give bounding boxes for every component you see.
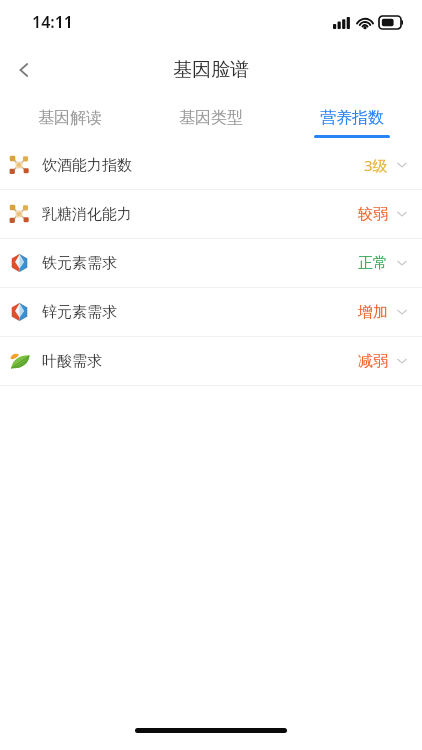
staticText: 铁元素需求 [42,254,117,273]
button[interactable]: 铁元素需求 [0,239,422,287]
staticText: 饮酒能力指数 [42,156,132,175]
button[interactable]: 叶酸需求 [0,337,422,385]
button[interactable]: 营养指数 [281,96,422,141]
staticText: 营养指数 [320,108,384,128]
staticText: 减弱 [358,352,388,371]
staticText: 增加 [358,303,388,322]
button[interactable]: 锌元素需求 [0,288,422,336]
staticText: 叶酸需求 [42,352,102,371]
button[interactable]: 基因解读 [0,96,140,141]
staticText: 基因脸谱 [173,58,249,82]
button[interactable]: 饮酒能力指数 [0,141,422,189]
staticText: 较弱 [358,205,388,224]
staticText: 基因类型 [179,108,243,128]
staticText: 乳糖消化能力 [42,205,132,224]
staticText: 锌元素需求 [42,303,117,322]
staticText: 正常 [358,254,388,273]
staticText: 3级 [364,155,388,175]
staticText: 基因解读 [38,108,102,128]
button[interactable]: 基因类型 [140,96,281,141]
staticText: 14:11 [32,11,74,33]
button[interactable]: 乳糖消化能力 [0,190,422,238]
button[interactable]: Back [0,46,48,94]
